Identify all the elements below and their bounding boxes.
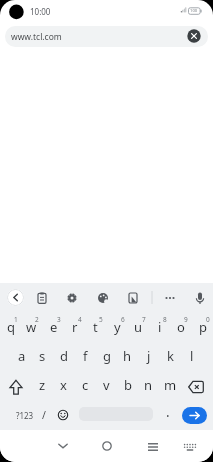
button[interactable] (190, 288, 210, 308)
staticText: 6 (121, 315, 125, 324)
staticText: u (134, 318, 143, 336)
staticText: j (147, 347, 151, 365)
button[interactable]: / (35, 401, 53, 429)
button[interactable]: c (75, 370, 96, 399)
staticText: www.tcl.com (11, 31, 62, 43)
staticText: l (190, 347, 194, 365)
staticText: z (39, 376, 46, 394)
staticText: / (42, 408, 46, 422)
staticText: c (82, 376, 89, 394)
staticText: 100 (190, 8, 198, 14)
staticText: b (124, 376, 132, 394)
staticText: 10:00 (30, 6, 51, 17)
button[interactable]: i (149, 312, 170, 341)
button[interactable] (141, 435, 165, 459)
staticText: q (7, 318, 15, 336)
button[interactable]: u (128, 312, 149, 341)
button[interactable]: m (160, 370, 181, 399)
button[interactable] (7, 289, 24, 306)
button[interactable]: ?123 (5, 401, 45, 429)
button[interactable]: a (11, 341, 32, 370)
button[interactable] (52, 402, 74, 428)
button[interactable]: x (53, 370, 74, 399)
staticText: w (26, 318, 37, 336)
staticText: 9 (184, 315, 188, 324)
button[interactable] (51, 434, 75, 458)
button[interactable]: z (32, 370, 53, 399)
button[interactable]: k (160, 341, 181, 370)
button[interactable]: . (160, 398, 176, 426)
staticText: p (199, 318, 207, 336)
button[interactable]: n (138, 370, 159, 399)
staticText: 4 (78, 315, 82, 324)
button[interactable] (62, 288, 82, 308)
staticText: a (18, 347, 26, 365)
staticText: y (114, 318, 121, 336)
staticText: 8 (163, 315, 167, 324)
button[interactable]: v (96, 370, 117, 399)
staticText: 0 (206, 315, 210, 324)
staticText: r (72, 318, 78, 336)
staticText: g (103, 347, 111, 365)
button[interactable] (183, 374, 209, 400)
staticText: t (93, 318, 98, 336)
staticText: v (103, 376, 110, 394)
button[interactable]: g (96, 341, 117, 370)
button[interactable] (32, 288, 52, 308)
button[interactable]: www.tcl.com (5, 26, 208, 47)
button[interactable]: t (85, 312, 106, 341)
button[interactable] (182, 407, 207, 424)
button[interactable]: b (117, 370, 138, 399)
staticText: 7 (142, 315, 146, 324)
staticText: i (158, 318, 162, 336)
button[interactable]: d (53, 341, 74, 370)
staticText: h (123, 347, 132, 365)
staticText: . (166, 403, 170, 421)
staticText: s (39, 347, 46, 365)
button[interactable]: f (75, 341, 96, 370)
button[interactable] (93, 288, 113, 308)
staticText: ?123 (16, 410, 34, 421)
button[interactable]: l (181, 341, 202, 370)
button[interactable] (160, 288, 180, 308)
button[interactable]: r (64, 312, 85, 341)
staticText: x (60, 376, 67, 394)
button[interactable]: q (0, 312, 21, 341)
button[interactable]: s (32, 341, 53, 370)
button[interactable] (123, 288, 143, 308)
staticText: k (167, 347, 174, 365)
button[interactable]: o (170, 312, 191, 341)
button[interactable] (186, 28, 202, 44)
staticText: 2 (35, 315, 39, 324)
button[interactable]: h (117, 341, 138, 370)
staticText: 5 (99, 315, 103, 324)
button[interactable] (95, 434, 119, 458)
button[interactable]: j (138, 341, 159, 370)
staticText: 1 (14, 315, 18, 324)
staticText: o (177, 318, 185, 336)
staticText: m (164, 376, 177, 394)
staticText: 3 (57, 315, 61, 324)
staticText: d (60, 347, 68, 365)
button[interactable]: w (21, 312, 42, 341)
button[interactable]: y (107, 312, 128, 341)
button[interactable]: e (43, 312, 64, 341)
button[interactable]: p (192, 312, 213, 341)
button[interactable] (3, 374, 29, 400)
staticText: f (83, 347, 88, 365)
button[interactable] (179, 436, 201, 458)
staticText: e (50, 318, 58, 336)
staticText: n (144, 376, 153, 394)
